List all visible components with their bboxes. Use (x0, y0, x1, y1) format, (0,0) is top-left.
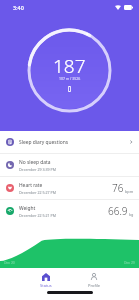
staticText: Sleep diary questions (19, 139, 69, 146)
staticText: Dec 20 (4, 260, 15, 265)
staticText: bpm (125, 189, 134, 194)
staticText: Weight (19, 205, 36, 212)
button[interactable]: Heart rate (0, 177, 139, 199)
staticText: Status (40, 283, 52, 288)
staticText: kg (129, 212, 134, 217)
staticText: No sleep data (19, 159, 51, 166)
button[interactable]: Weight (0, 200, 139, 222)
staticText: 66.9 (108, 204, 128, 218)
staticText: 187 (53, 53, 86, 79)
staticText: 3:40 (13, 4, 24, 11)
other: Battery (124, 5, 133, 10)
staticText: 107 m / 3526 (59, 76, 81, 81)
button[interactable]: Sleep diary questions (0, 131, 139, 153)
staticText: December 22 5:21 PM (19, 213, 56, 218)
staticText: Dec 29 (124, 260, 135, 265)
staticText: Heart rate (19, 182, 43, 189)
other: Open (128, 139, 134, 145)
staticText: December 22 5:27 PM (19, 190, 56, 195)
other: Wifi (115, 5, 121, 10)
staticText: Profile (88, 283, 101, 288)
staticText: 76 (112, 181, 124, 195)
button[interactable]: Profile (70, 272, 118, 289)
button[interactable]: No sleep data (0, 154, 139, 176)
staticText: December 29 3:39 PM (19, 167, 56, 172)
button[interactable]: Status (22, 272, 70, 289)
